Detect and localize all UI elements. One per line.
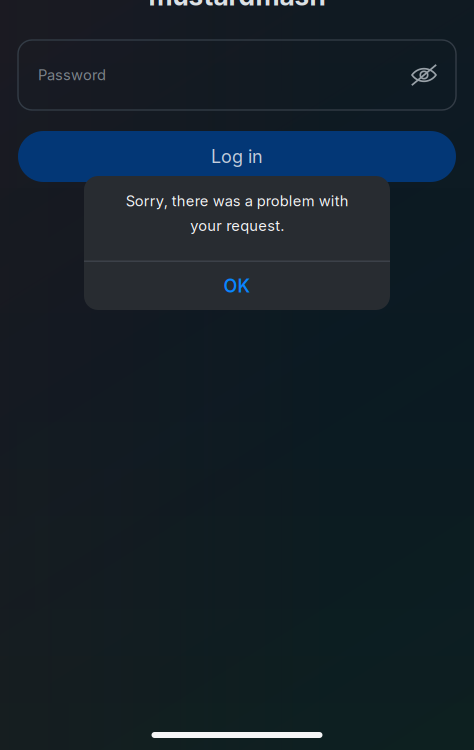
staticText: Sorry, there was a problem with your req… — [125, 192, 348, 234]
button[interactable]: OK — [84, 262, 390, 310]
button[interactable]: Log in — [18, 131, 456, 182]
staticText: Log in — [211, 146, 263, 167]
button[interactable]: Hide password — [411, 64, 437, 86]
staticText: mustardmash — [148, 0, 325, 12]
staticText: OK — [223, 275, 250, 297]
staticText: Password — [38, 66, 106, 84]
